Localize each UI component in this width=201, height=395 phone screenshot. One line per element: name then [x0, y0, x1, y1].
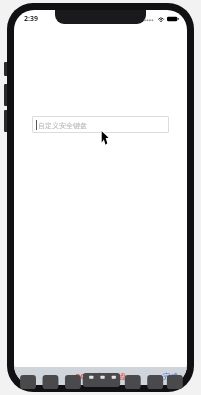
- staticText: BONC安全键盘: [75, 371, 127, 381]
- staticText: 完成: [163, 372, 178, 381]
- button[interactable]: 自定义安全键盘: [32, 116, 169, 133]
- staticText: 自定义安全键盘: [38, 121, 87, 130]
- button[interactable]: 完成: [154, 367, 187, 385]
- other: Pointer: [101, 131, 110, 145]
- staticText: 2:39: [24, 14, 38, 24]
